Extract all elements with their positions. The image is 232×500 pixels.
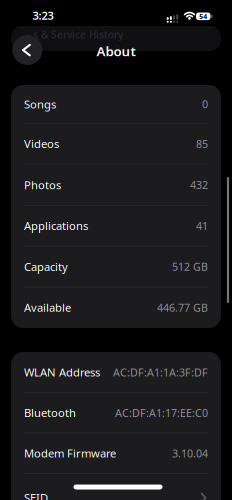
staticText: Modem Firmware — [24, 446, 116, 461]
staticText: AC:DF:A1:17:EE:C0 — [115, 405, 208, 420]
staticText: SEID — [24, 490, 48, 500]
staticText: WLAN Address — [24, 365, 100, 380]
staticText: 432 — [190, 177, 208, 192]
staticText: Applications — [24, 218, 88, 233]
staticText: Photos — [24, 177, 61, 192]
button[interactable]: Back — [12, 35, 42, 65]
staticText: Capacity — [24, 259, 68, 274]
staticText: 0 — [202, 97, 208, 111]
staticText: 85 — [196, 136, 208, 151]
staticText: Songs — [24, 96, 56, 112]
staticText: Bluetooth — [24, 405, 76, 420]
staticText: 3:23 — [32, 8, 53, 23]
staticText: 512 GB — [172, 259, 208, 274]
staticText: AC:DF:A1:1A:3F:DF — [113, 365, 208, 379]
staticText: Available — [24, 300, 71, 315]
staticText: Videos — [24, 136, 59, 151]
staticText: About — [96, 42, 135, 60]
button[interactable]: SEID — [24, 488, 208, 500]
staticText: s & Service History — [33, 28, 123, 41]
staticText: 41 — [196, 218, 208, 233]
staticText: 3.10.04 — [172, 446, 208, 460]
staticText: 54 — [199, 12, 207, 21]
staticText: 446.77 GB — [157, 300, 208, 315]
